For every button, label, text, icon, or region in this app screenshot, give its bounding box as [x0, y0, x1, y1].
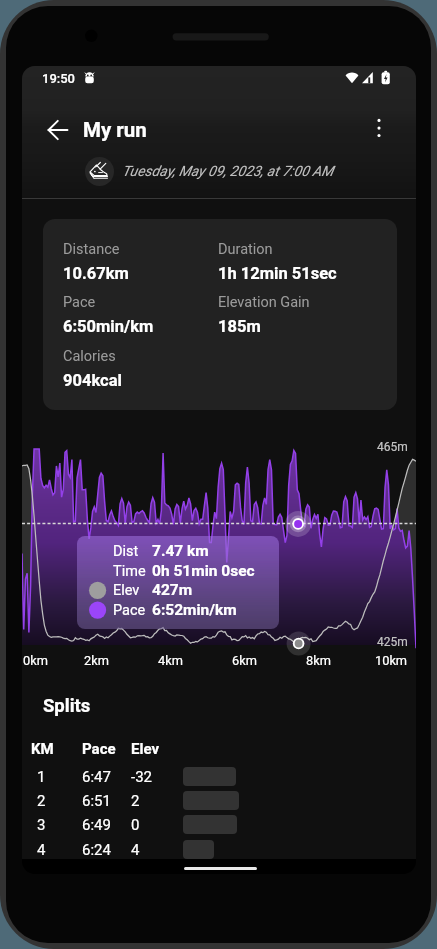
staticText: 4	[131, 841, 140, 859]
staticText: 1h 12min 51sec	[218, 264, 337, 283]
button[interactable]: 2	[22, 788, 416, 812]
staticText: Elev	[113, 582, 140, 599]
button[interactable]: Distance	[43, 219, 397, 410]
staticText: 10.67km	[63, 264, 129, 283]
staticText: 0h 51min 0sec	[152, 562, 255, 580]
staticText: 6:51	[82, 792, 111, 810]
staticText: 6:47	[82, 768, 111, 786]
staticText: Time	[113, 563, 146, 580]
staticText: 2km	[84, 653, 109, 668]
staticText: 904kcal	[63, 371, 122, 390]
staticText: 3	[37, 816, 46, 834]
staticText: 10km	[375, 653, 408, 668]
staticText: 185m	[218, 317, 261, 336]
staticText: Distance	[63, 241, 120, 258]
button[interactable]: 3	[22, 812, 416, 836]
staticText: Elev	[131, 740, 160, 758]
staticText: 2	[131, 792, 140, 810]
staticText: Dist	[113, 543, 139, 560]
staticText: 2	[37, 792, 46, 810]
staticText: -32	[131, 768, 153, 786]
staticText: Tuesday, May 09, 2023, at 7:00 AM	[122, 163, 334, 180]
staticText: 1	[37, 768, 46, 786]
staticText: 6:50min/km	[63, 317, 154, 336]
staticText: My run	[83, 118, 147, 142]
staticText: 6km	[232, 653, 257, 668]
staticText: KM	[31, 740, 54, 758]
staticText: Duration	[218, 241, 273, 258]
staticText: Splits	[43, 695, 91, 717]
staticText: 8km	[306, 653, 331, 668]
staticText: 0km	[23, 653, 48, 668]
staticText: 427m	[152, 581, 193, 599]
button[interactable]: More options	[355, 104, 403, 152]
staticText: 0	[131, 816, 140, 834]
staticText: 7.47 km	[152, 542, 209, 560]
staticText: Calories	[63, 348, 116, 365]
button[interactable]: 4	[22, 837, 416, 861]
button[interactable]: Back	[34, 106, 82, 154]
staticText: Elevation Gain	[218, 294, 310, 311]
staticText: 19:50	[42, 71, 76, 86]
staticText: 425m	[377, 635, 408, 649]
staticText: 6:24	[82, 841, 111, 859]
staticText: Pace	[63, 294, 96, 311]
staticText: Pace	[82, 740, 116, 758]
button[interactable]: 1	[22, 764, 416, 788]
staticText: 465m	[377, 440, 408, 454]
staticText: 4km	[158, 653, 183, 668]
staticText: Pace	[113, 602, 146, 619]
staticText: 6:52min/km	[152, 601, 237, 619]
staticText: 4	[37, 841, 46, 859]
staticText: 6:49	[82, 816, 111, 834]
